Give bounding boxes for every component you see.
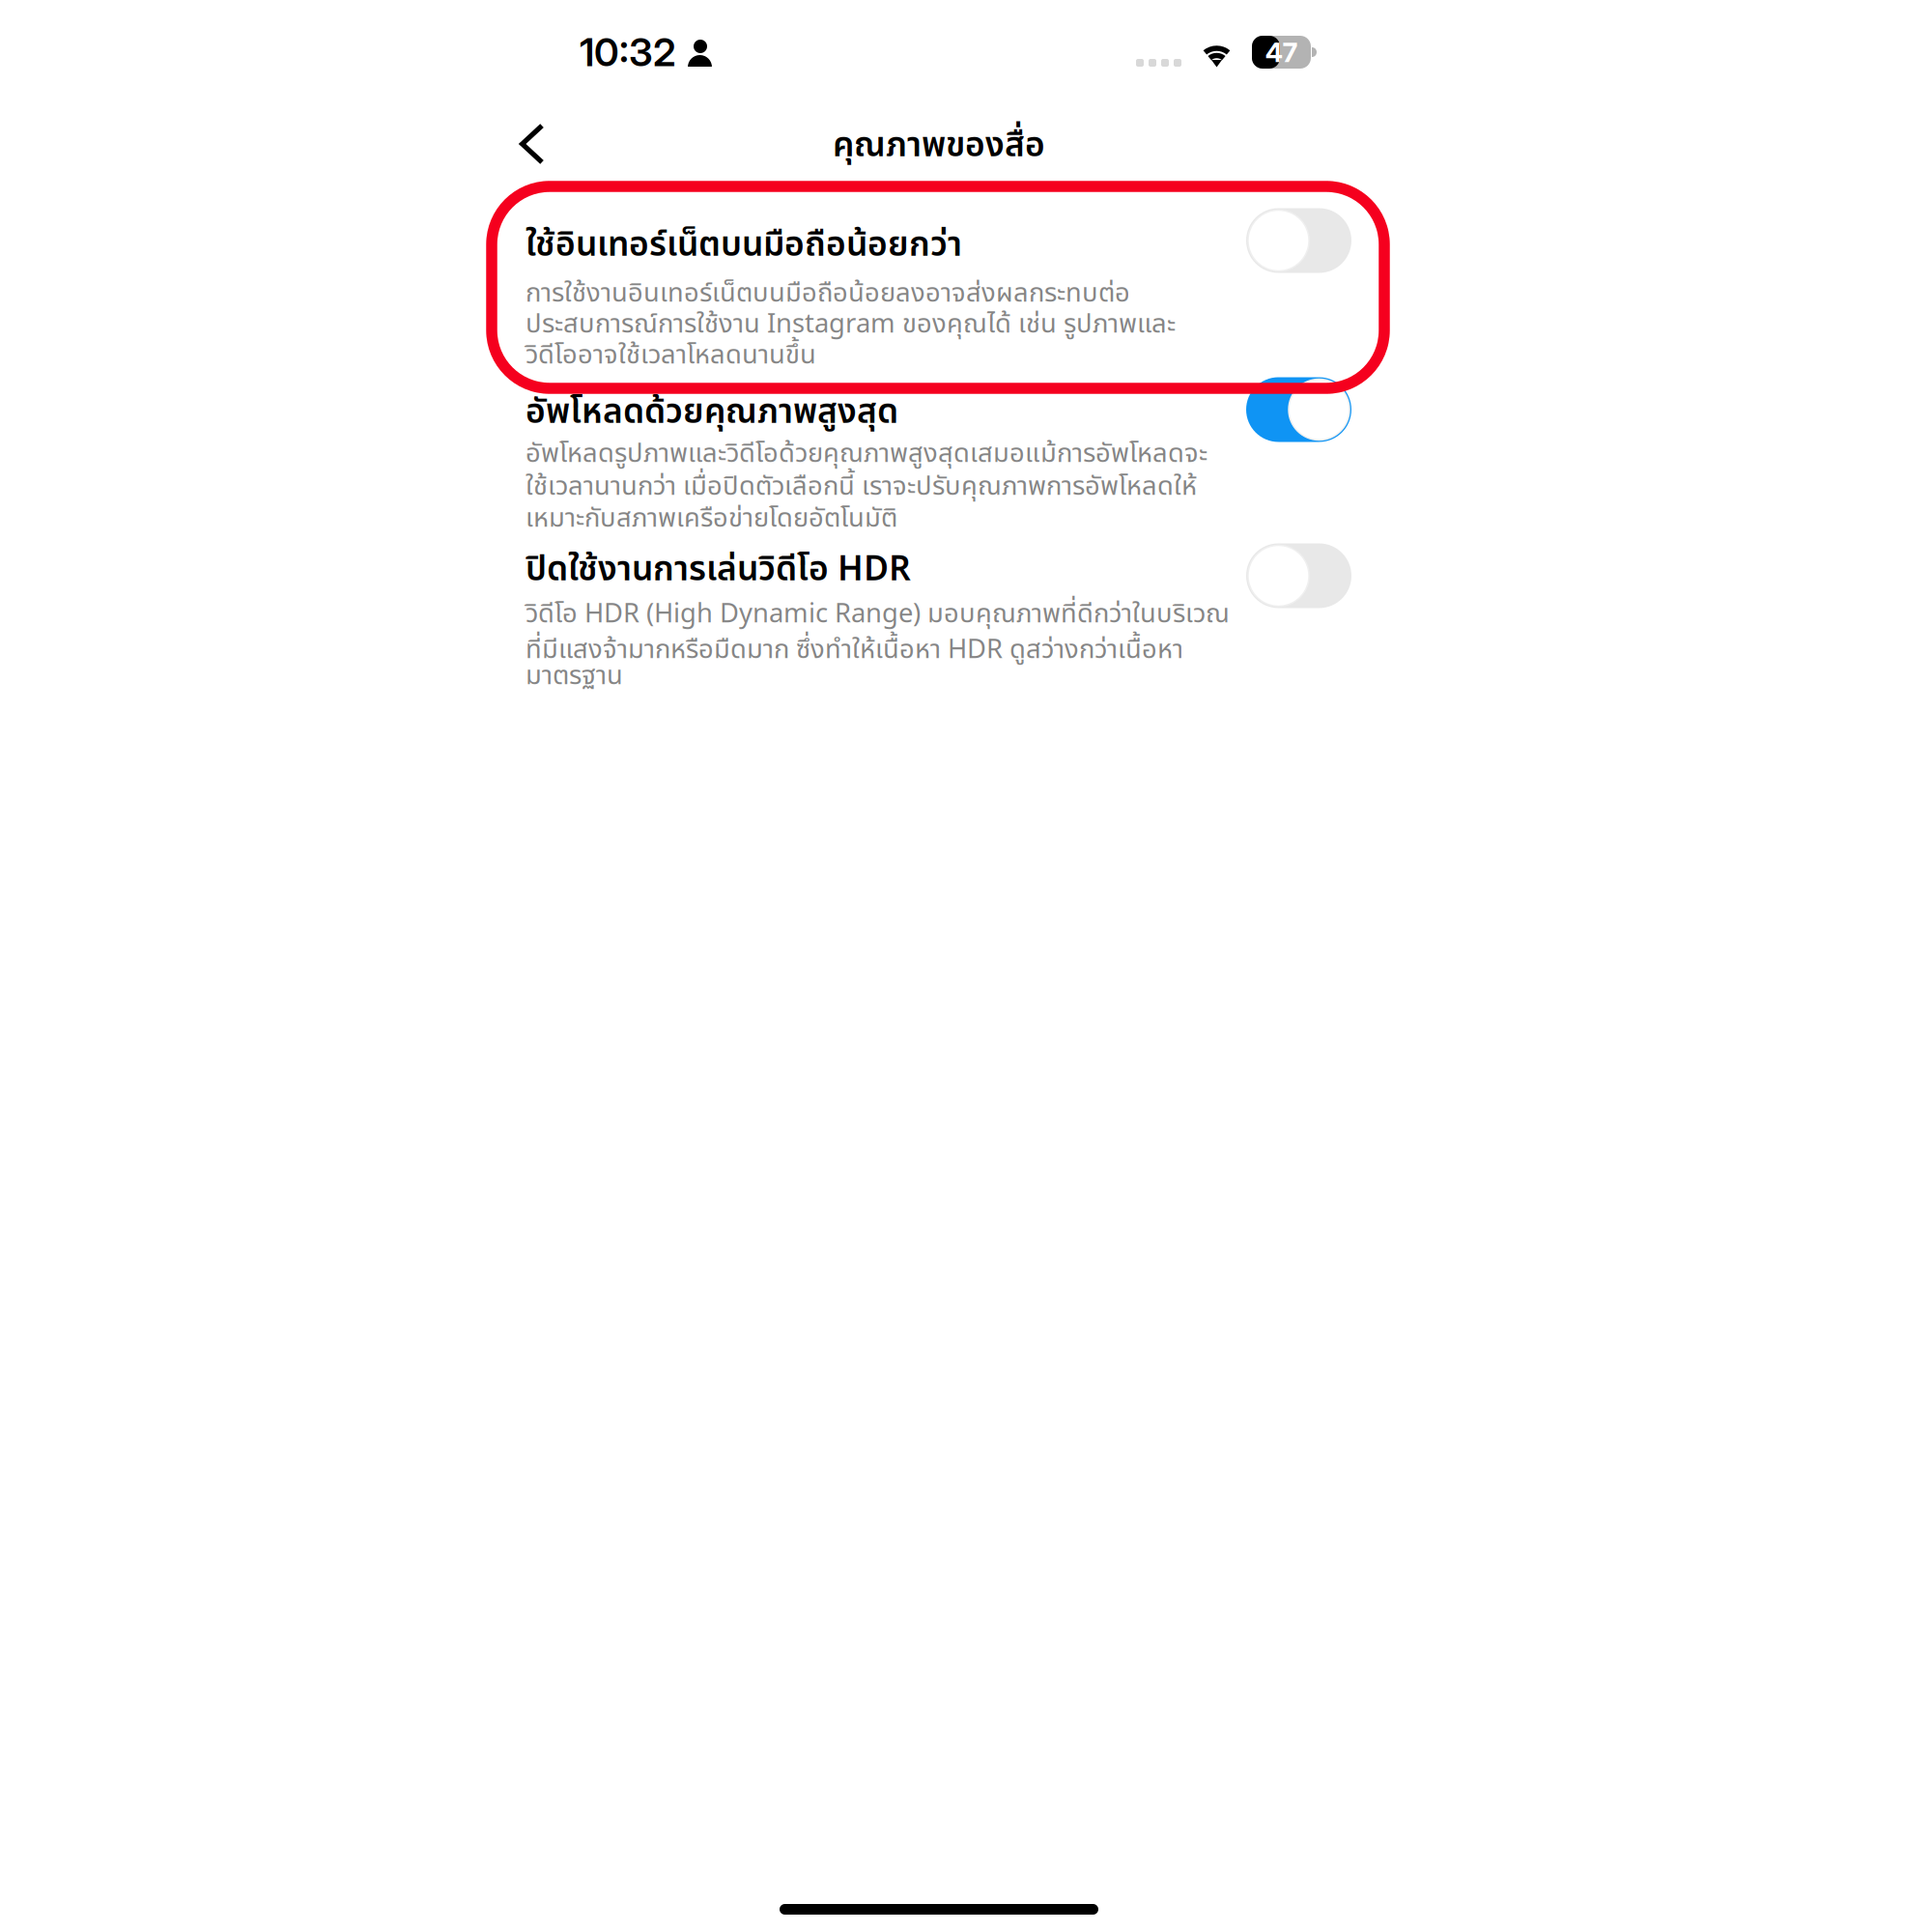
button[interactable]: อัพโหลดด้วยคุณภาพสูงสุด: [526, 380, 1351, 540]
staticText: มาตรฐาน: [526, 656, 623, 696]
staticText: ปิดใช้งานการเล่นวิดีโอ HDR: [526, 544, 911, 596]
staticText: การใช้งานอินเทอร์เน็ตบนมือถือน้อยลงอาจส่…: [526, 274, 1130, 314]
staticText: คุณภาพของสื่อ: [833, 120, 1045, 172]
staticText: 10:32: [580, 29, 676, 76]
staticText: 47: [1265, 36, 1298, 69]
button[interactable]: ใช้อินเทอร์เน็ตบนมือถือน้อยกว่า: [526, 213, 1351, 377]
staticText: อัพโหลดรูปภาพและวิดีโอด้วยคุณภาพสูงสุดเส…: [526, 434, 1207, 474]
staticText: อัพโหลดด้วยคุณภาพสูงสุด: [526, 387, 898, 438]
staticText: ใช้อินเทอร์เน็ตบนมือถือน้อยกว่า: [526, 220, 962, 271]
staticText: เหมาะกับสภาพเครือข่ายโดยอัตโนมัติ: [526, 499, 897, 539]
button[interactable]: ปิดใช้งานการเล่นวิดีโอ HDR: [526, 537, 1351, 697]
staticText: ใช้เวลานานกว่า เมื่อปิดตัวเลือกนี้ เราจะ…: [526, 467, 1197, 507]
button[interactable]: Back: [502, 114, 562, 174]
staticText: ประสบการณ์การใช้งาน Instagram ของคุณได้ …: [526, 305, 1176, 345]
staticText: วิดีโอ HDR (High Dynamic Range) มอบคุณภา…: [526, 594, 1230, 634]
staticText: วิดีโออาจใช้เวลาโหลดนานขึ้น: [526, 336, 816, 375]
staticText: ที่มีแสงจ้ามากหรือมืดมาก ซึ่งทำให้เนื้อห…: [526, 630, 1183, 670]
